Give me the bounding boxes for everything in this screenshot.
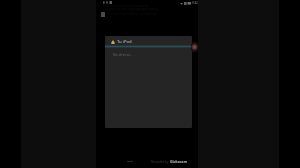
other: Notifications	[103, 1, 119, 4]
other: Cast device	[111, 40, 115, 44]
staticText: Globocam	[170, 159, 187, 164]
button[interactable]: Connect to your device quickly now	[101, 12, 193, 17]
staticText: Tu iPod	[117, 39, 132, 45]
staticText: 9:32	[192, 1, 198, 5]
other: Recording indicator	[191, 42, 198, 52]
staticText: No devices...	[113, 52, 133, 57]
button[interactable]: Cast device	[105, 36, 192, 128]
staticText: Recorded by	[151, 160, 170, 164]
other: Battery	[184, 2, 191, 5]
other: Wi-Fi	[180, 2, 183, 5]
